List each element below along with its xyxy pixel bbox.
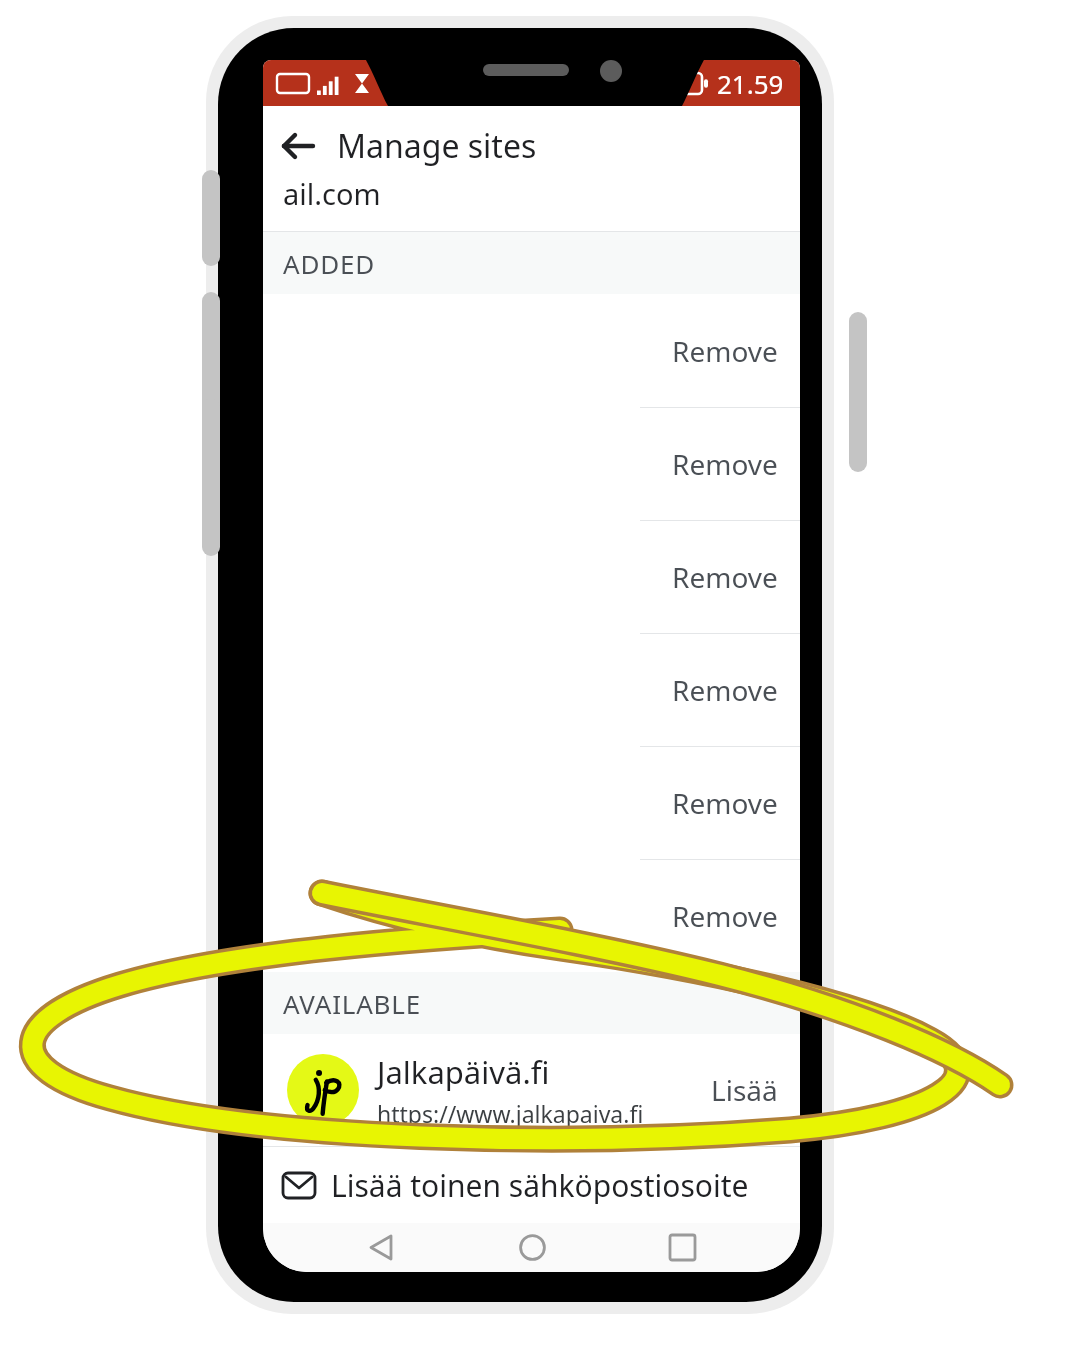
staticText: Remove [672,784,778,822]
button[interactable]: Jalkapäivä.fi [263,1034,800,1146]
staticText: 21.59 [717,66,784,101]
button[interactable]: Remove [263,294,800,407]
staticText: AVAILABLE [283,986,421,1021]
button[interactable]: Home [499,1223,565,1272]
staticText: https://www.jalkapaiva.fi [377,1098,644,1129]
button[interactable]: Remove [263,520,800,633]
staticText: Remove [672,445,778,483]
button[interactable]: Back [269,117,327,175]
staticText: Lisää [711,1071,778,1109]
staticText: Lisää toinen sähköpostiosoite [331,1165,749,1206]
staticText: Jalkapäivä.fi [377,1051,550,1093]
staticText: Remove [672,897,778,935]
button[interactable]: Remove [263,859,800,972]
staticText: Manage sites [337,124,537,168]
button[interactable]: Lisää toinen sähköpostiosoite [263,1147,800,1223]
staticText: Remove [672,671,778,709]
button[interactable]: Remove [263,407,800,520]
staticText: Remove [672,558,778,596]
staticText: ADDED [283,246,376,281]
staticText: ail.com [283,174,381,213]
button[interactable]: Remove [263,633,800,746]
button[interactable]: Recents [649,1223,715,1272]
staticText: Remove [672,332,778,370]
button[interactable]: Back [348,1223,414,1272]
button[interactable]: Remove [263,746,800,859]
